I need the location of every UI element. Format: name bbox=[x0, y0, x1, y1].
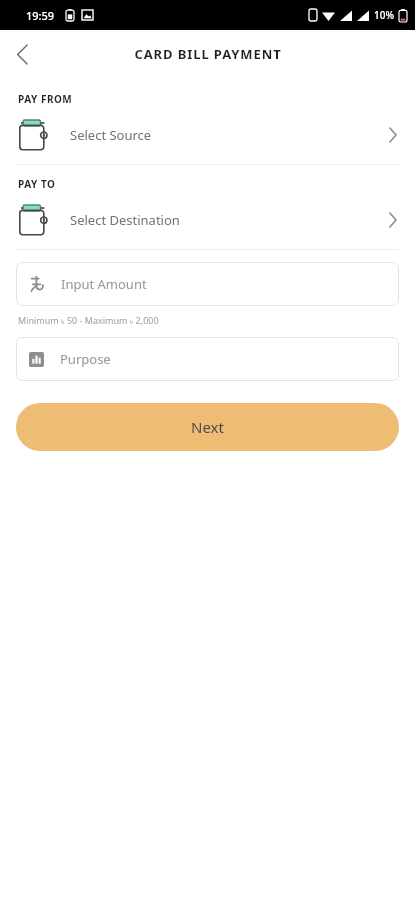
button[interactable]: Select Source bbox=[0, 106, 415, 164]
button[interactable]: Next bbox=[16, 403, 399, 451]
button[interactable]: Input Amount bbox=[16, 262, 399, 306]
staticText: Input Amount bbox=[61, 275, 147, 293]
staticText: CARD BILL PAYMENT bbox=[134, 45, 282, 63]
staticText: Purpose bbox=[60, 350, 111, 368]
staticText: PAY FROM bbox=[18, 92, 73, 106]
staticText: Select Destination bbox=[70, 211, 180, 229]
button[interactable]: Select Destination bbox=[0, 191, 415, 249]
staticText: Minimum ৳ 50 - Maximum ৳ 2,000 bbox=[18, 314, 159, 326]
staticText: 10% bbox=[374, 8, 394, 22]
staticText: Select Source bbox=[70, 126, 152, 144]
staticText: Next bbox=[191, 417, 224, 437]
button[interactable]: Purpose bbox=[16, 337, 399, 381]
button[interactable]: Back bbox=[0, 32, 44, 76]
staticText: PAY TO bbox=[18, 177, 56, 191]
staticText: 19:59 bbox=[26, 8, 55, 23]
